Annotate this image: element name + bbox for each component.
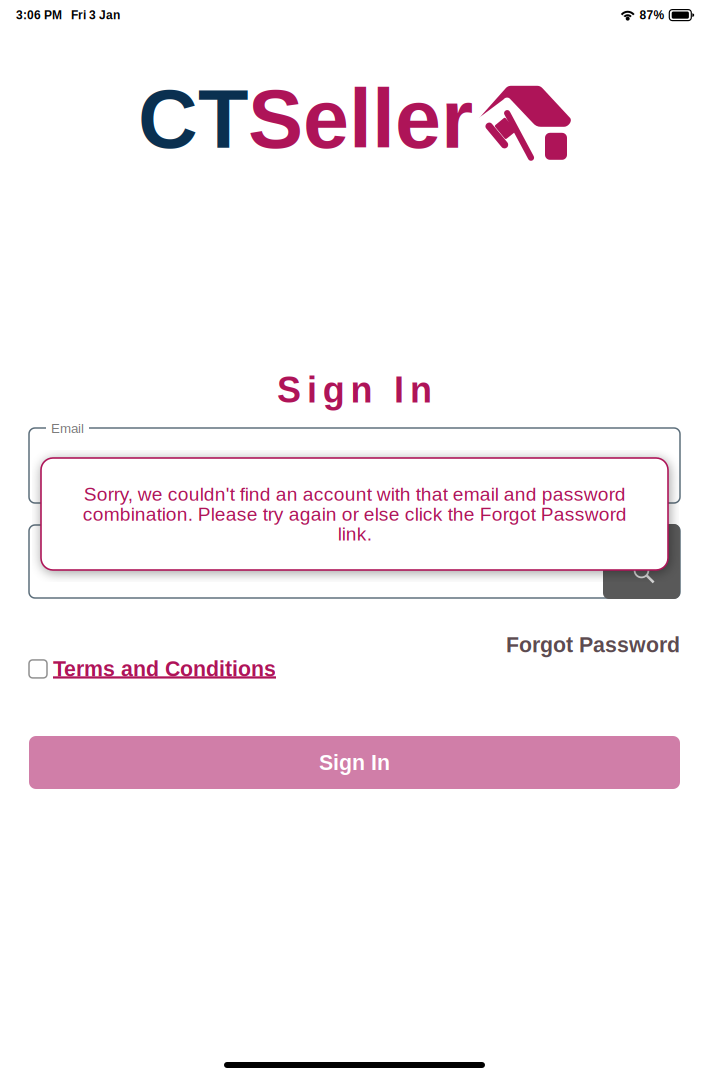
staticText: Sign In (319, 751, 390, 774)
staticText: CT (138, 73, 248, 165)
staticText: 3:06 PM Fri 3 Jan (16, 8, 120, 22)
staticText: 87% (637, 8, 665, 22)
button[interactable]: Terms and Conditions (29, 657, 276, 681)
staticText: Seller (248, 73, 473, 165)
button[interactable]: Sign In (29, 736, 680, 789)
staticText: Email (51, 421, 84, 436)
button[interactable]: Forgot Password (506, 633, 680, 657)
staticText: Terms and Conditions (53, 657, 276, 681)
button[interactable]: Show password (603, 524, 680, 599)
staticText: Forgot Password (506, 633, 680, 657)
staticText: Sign In (277, 370, 432, 410)
staticText: Sorry, we couldn't find an account with … (82, 483, 626, 544)
